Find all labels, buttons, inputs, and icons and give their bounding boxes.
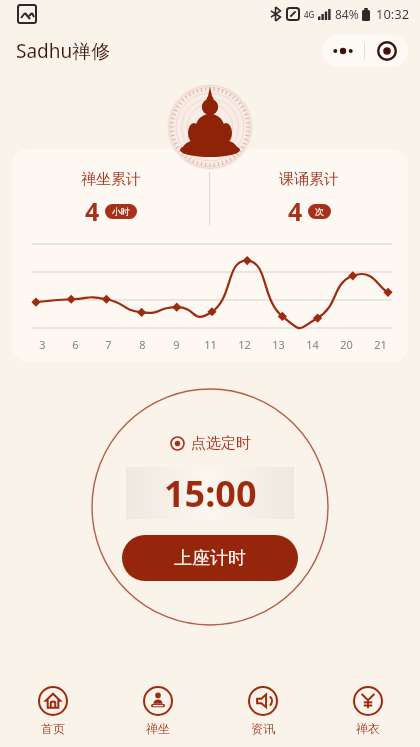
staticText: 6 (72, 337, 79, 352)
button[interactable]: 首页 (0, 675, 105, 747)
button[interactable]: 上座计时 (122, 535, 298, 581)
staticText: 禅坐累计 (81, 170, 141, 189)
staticText: 上座计时 (174, 547, 246, 570)
staticText: 禅衣 (356, 721, 380, 736)
button[interactable]: Target (365, 35, 408, 67)
staticText: 4 (288, 194, 303, 228)
staticText: 4 (85, 194, 100, 228)
staticText: 84% (335, 6, 359, 22)
staticText: 14 (306, 337, 319, 352)
staticText: Sadhu禅修 (16, 38, 111, 64)
staticText: 8 (139, 337, 146, 352)
staticText: 13 (272, 337, 285, 352)
staticText: 7 (105, 337, 112, 352)
staticText: 资讯 (251, 721, 275, 736)
button[interactable]: More options (322, 35, 364, 67)
staticText: 15:00 (164, 469, 257, 518)
button[interactable]: 禅衣 (315, 675, 420, 747)
staticText: 21 (374, 337, 387, 352)
staticText: 10:32 (376, 5, 410, 23)
button[interactable]: 15:00 (126, 467, 294, 519)
staticText: 11 (204, 337, 217, 352)
staticText: 首页 (41, 721, 65, 736)
button[interactable]: 禅坐 (105, 675, 210, 747)
staticText: 3 (39, 337, 46, 352)
staticText: 20 (340, 337, 353, 352)
staticText: 禅坐 (146, 721, 170, 736)
button[interactable]: 点选定时 (170, 434, 251, 453)
staticText: 次 (315, 206, 324, 217)
button[interactable]: 禅坐累计 (12, 170, 209, 228)
staticText: 4G (304, 9, 315, 20)
staticText: 点选定时 (191, 434, 251, 453)
button[interactable]: 资讯 (210, 675, 315, 747)
staticText: 12 (238, 337, 251, 352)
button[interactable]: 课诵累计 (210, 170, 408, 228)
staticText: 小时 (112, 206, 130, 217)
staticText: 9 (173, 337, 180, 352)
staticText: 课诵累计 (279, 170, 339, 189)
